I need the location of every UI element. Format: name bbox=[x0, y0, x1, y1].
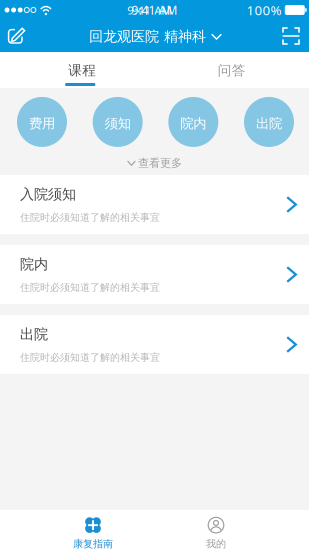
button[interactable]: 问答 bbox=[154, 52, 309, 88]
button[interactable]: Compose bbox=[0, 24, 29, 48]
button[interactable]: 出院 bbox=[244, 97, 294, 147]
staticText: 查看更多 bbox=[138, 156, 182, 170]
staticText: 住院时必须知道了解的相关事宜 bbox=[20, 281, 160, 294]
staticText: 住院时必须知道了解的相关事宜 bbox=[20, 211, 160, 224]
staticText: 100% bbox=[246, 1, 281, 19]
button[interactable]: 我的 bbox=[171, 510, 261, 550]
button[interactable]: 院内 bbox=[168, 97, 218, 147]
button[interactable]: 康复指南 bbox=[48, 510, 138, 550]
staticText: 院内 bbox=[20, 255, 48, 273]
button[interactable]: 课程 bbox=[0, 52, 154, 88]
button[interactable]: 院内 bbox=[0, 245, 309, 304]
staticText: 出院 bbox=[256, 115, 282, 132]
staticText: 9:41 AM bbox=[131, 2, 177, 18]
button[interactable]: 查看更多 bbox=[127, 147, 182, 170]
staticText: 问答 bbox=[218, 62, 246, 79]
button[interactable]: 回龙观医院 bbox=[89, 27, 222, 45]
button[interactable]: 出院 bbox=[0, 315, 309, 374]
staticText: 我的 bbox=[206, 538, 226, 550]
staticText: 出院 bbox=[20, 325, 48, 343]
staticText: 费用 bbox=[29, 115, 55, 132]
staticText: 入院须知 bbox=[20, 185, 76, 203]
staticText: 住院时必须知道了解的相关事宜 bbox=[20, 351, 160, 364]
button[interactable]: 费用 bbox=[17, 97, 67, 147]
staticText: 精神科 bbox=[164, 28, 206, 45]
staticText: 9:41 AM bbox=[127, 2, 171, 18]
staticText: 课程 bbox=[68, 62, 96, 79]
staticText: 回龙观医院 bbox=[89, 28, 159, 45]
button[interactable]: 入院须知 bbox=[0, 175, 309, 234]
button[interactable]: Scan bbox=[282, 27, 309, 45]
staticText: 须知 bbox=[105, 115, 131, 132]
button[interactable]: 须知 bbox=[93, 97, 143, 147]
staticText: 康复指南 bbox=[73, 538, 113, 550]
staticText: 院内 bbox=[180, 115, 206, 132]
